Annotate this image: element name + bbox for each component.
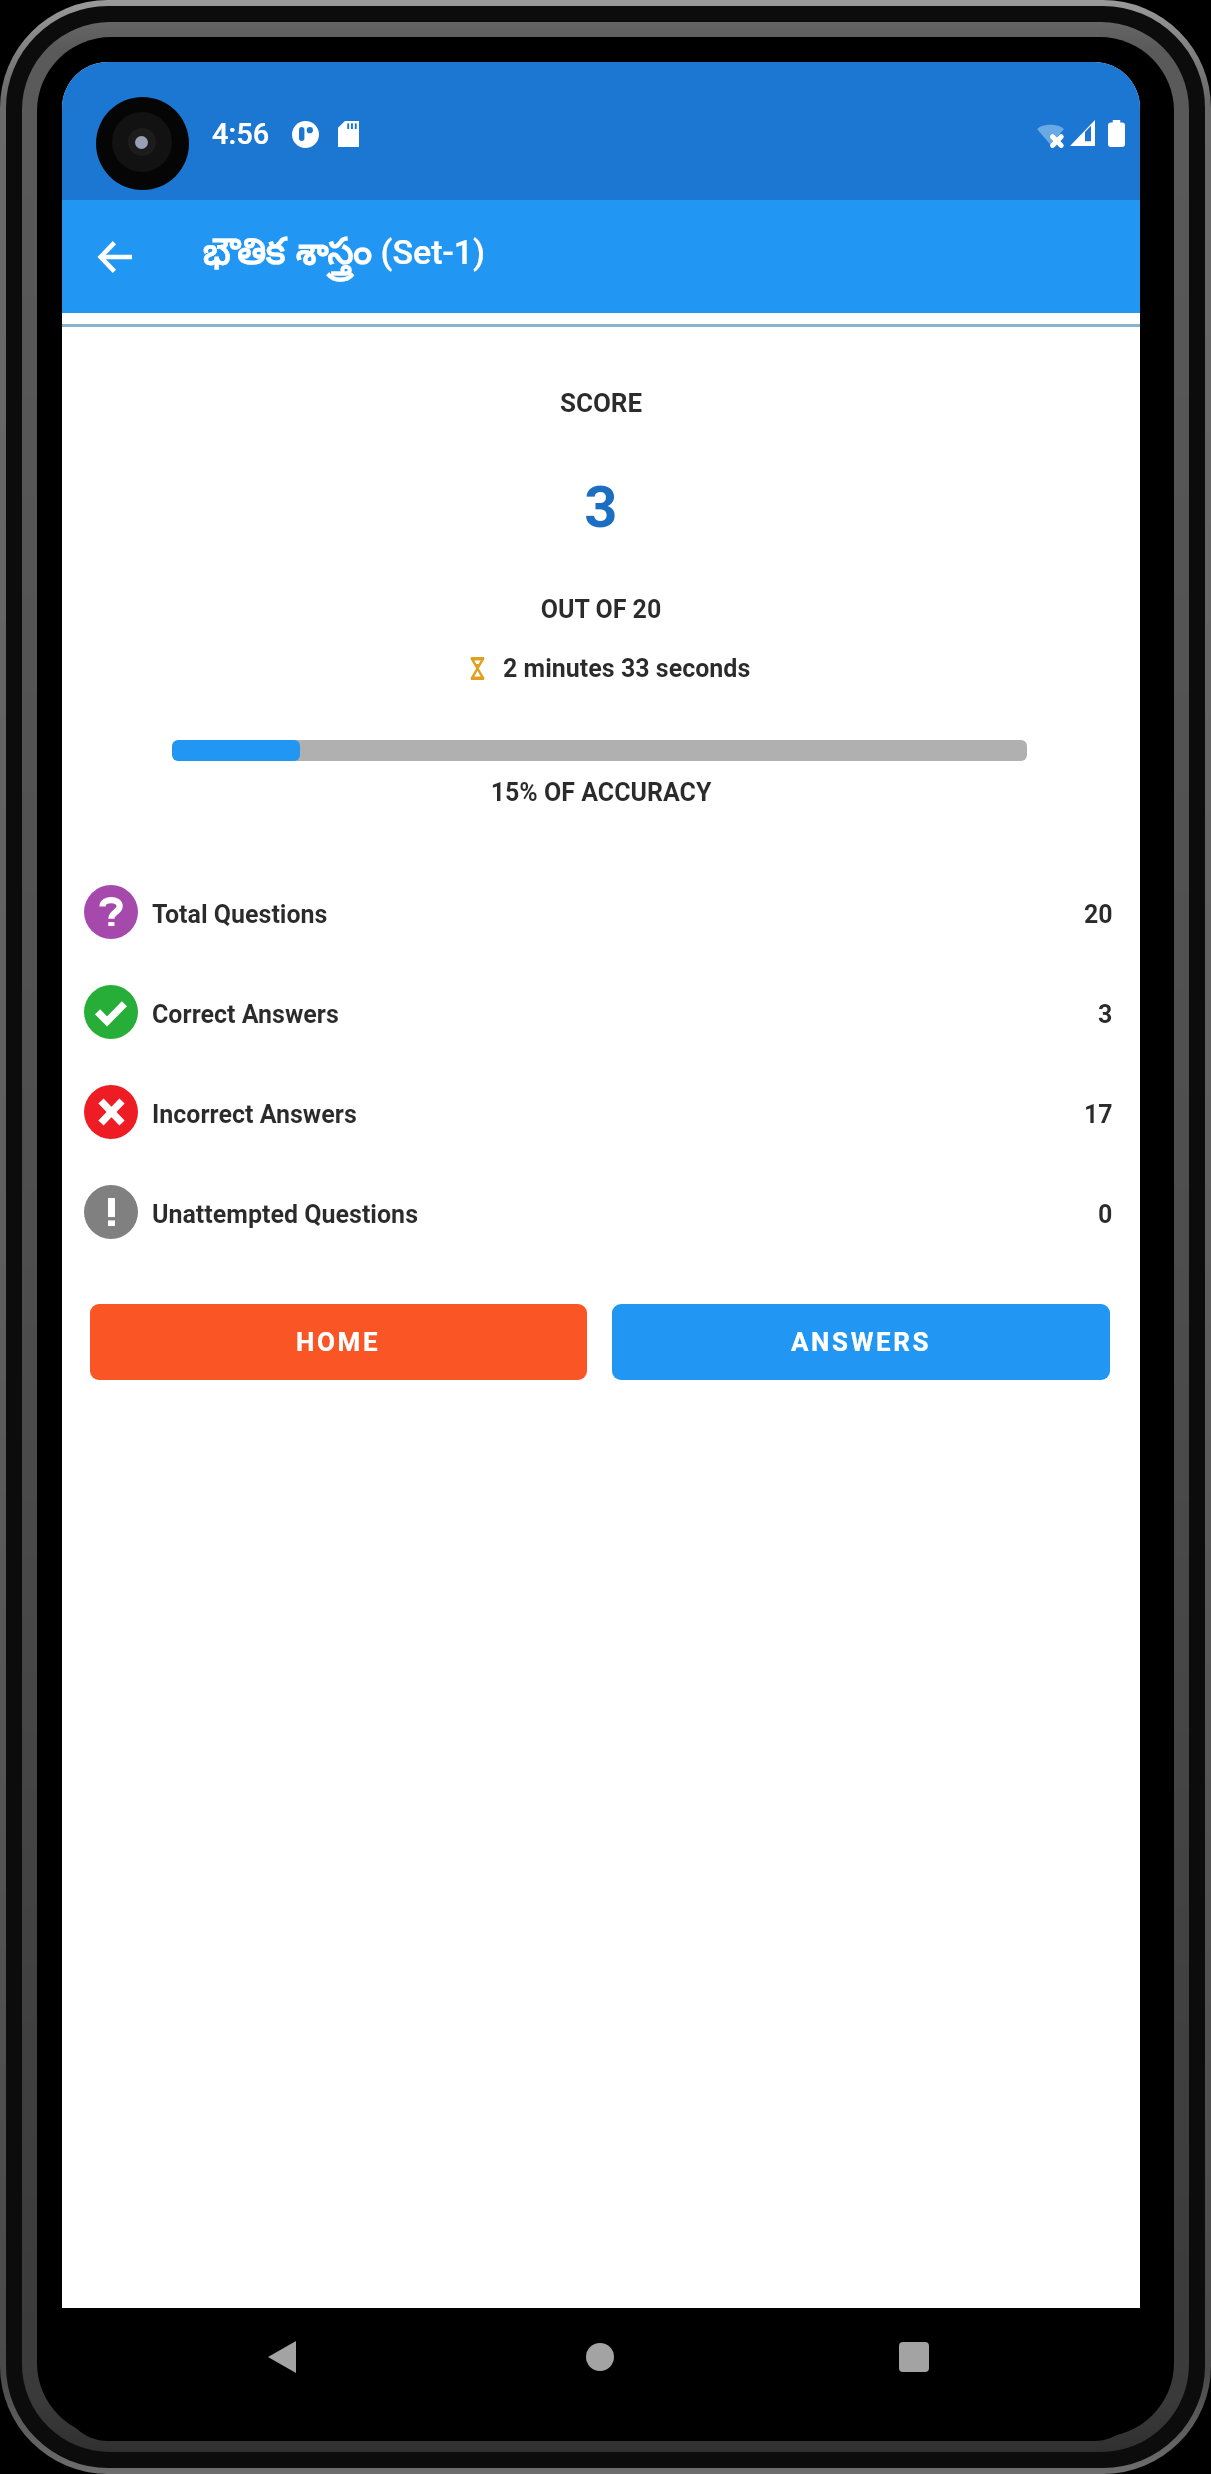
staticText: 15% OF ACCURACY: [62, 778, 1140, 807]
staticText: భౌతిక శాస్త్రం (Set-1): [203, 232, 486, 282]
button[interactable]: Home: [565, 2322, 635, 2392]
staticText: 4:56: [212, 117, 270, 151]
button[interactable]: Correct Answers: [84, 962, 1113, 1062]
button[interactable]: HOME: [90, 1304, 587, 1380]
button[interactable]: Total Questions: [84, 862, 1113, 962]
button[interactable]: Unattempted Questions: [84, 1162, 1113, 1262]
staticText: SCORE: [62, 388, 1140, 418]
button[interactable]: Recents: [879, 2322, 949, 2392]
button[interactable]: ANSWERS: [612, 1304, 1110, 1380]
staticText: OUT OF 20: [62, 595, 1140, 624]
button[interactable]: Back: [247, 2322, 317, 2392]
staticText: Correct Answers: [152, 1000, 339, 1029]
button[interactable]: Back: [62, 200, 170, 313]
staticText: Incorrect Answers: [152, 1100, 357, 1129]
staticText: 20: [1084, 900, 1113, 929]
staticText: ANSWERS: [791, 1327, 932, 1357]
staticText: 3: [62, 473, 1140, 541]
staticText: 0: [1098, 1200, 1113, 1229]
staticText: Unattempted Questions: [152, 1200, 418, 1229]
staticText: 3: [1098, 1000, 1113, 1029]
staticText: 2 minutes 33 seconds: [503, 654, 751, 683]
button[interactable]: Incorrect Answers: [84, 1062, 1113, 1162]
staticText: HOME: [296, 1327, 381, 1357]
staticText: Total Questions: [152, 900, 328, 929]
staticText: 17: [1084, 1100, 1113, 1129]
